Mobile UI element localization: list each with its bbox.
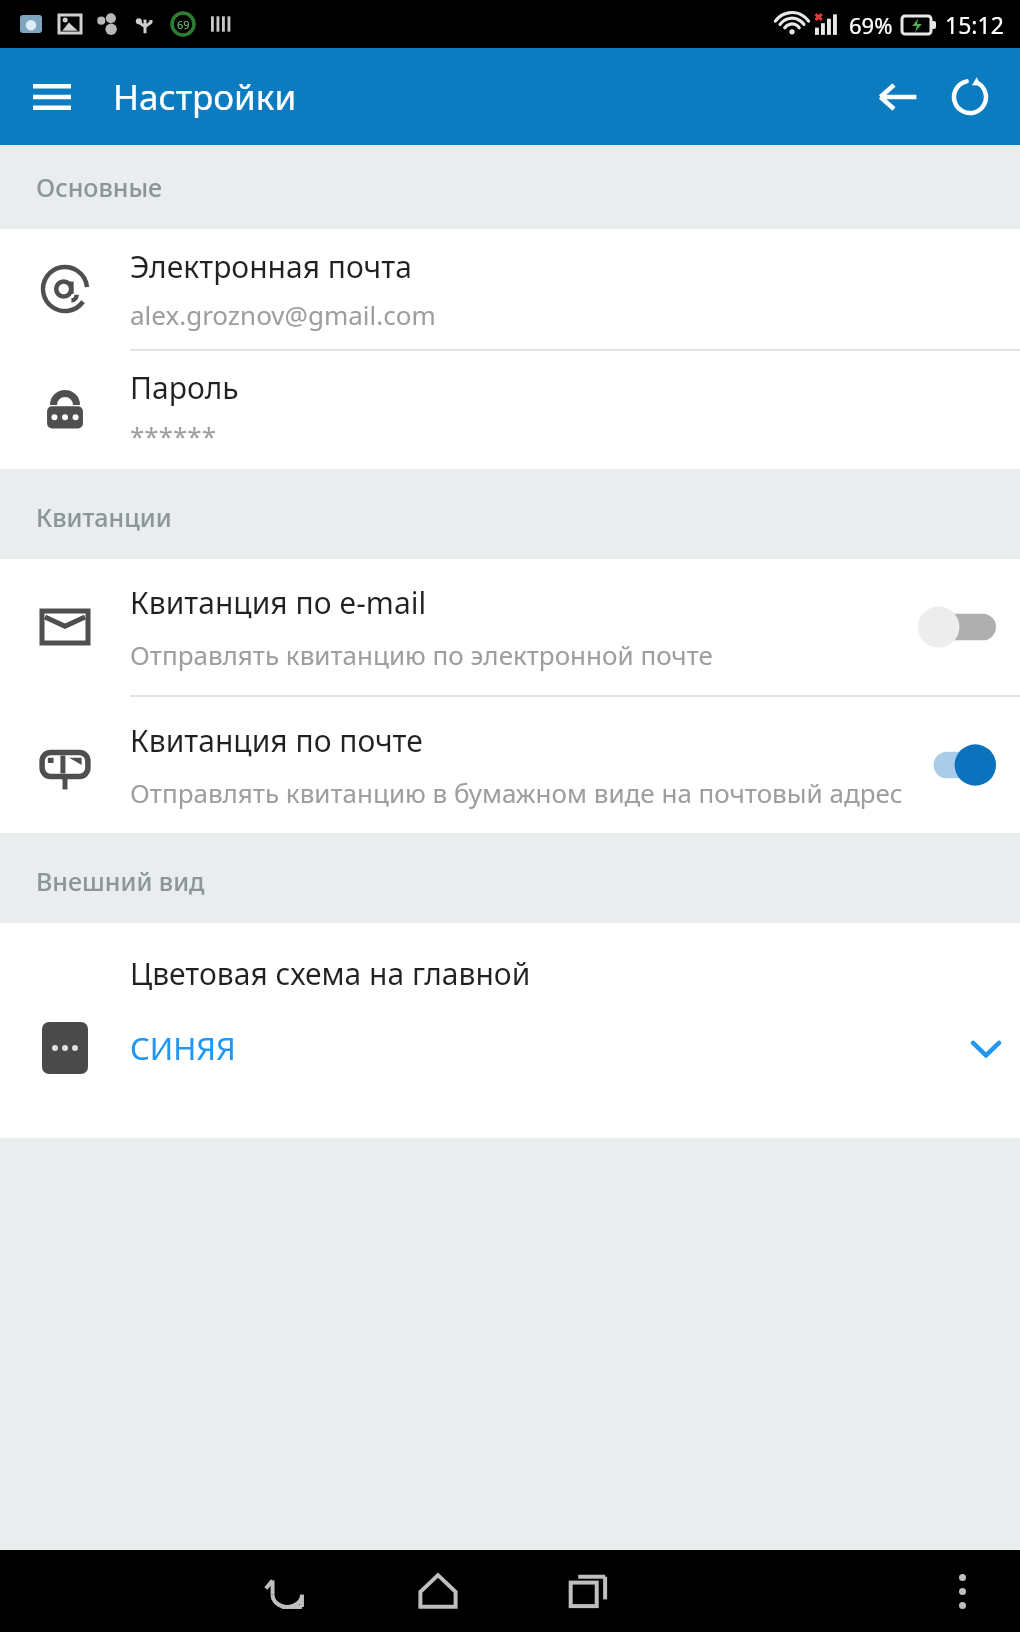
staticText: СИНЯЯ: [130, 1027, 236, 1069]
button[interactable]: Home: [392, 1550, 484, 1632]
button[interactable]: Menu: [22, 67, 82, 127]
button[interactable]: Off: [918, 604, 996, 650]
staticText: Электронная почта: [130, 246, 412, 287]
staticText: Цветовая схема на главной: [130, 953, 531, 994]
button[interactable]: More options: [922, 1551, 1002, 1631]
staticText: 69: [177, 17, 190, 32]
button[interactable]: On: [918, 742, 996, 788]
staticText: Квитанция по почте: [130, 720, 423, 761]
staticText: Квитанции: [36, 500, 172, 534]
button[interactable]: Электронная почта: [0, 229, 1020, 349]
staticText: Квитанция по e-mail: [130, 582, 427, 623]
button[interactable]: Recent apps: [544, 1550, 636, 1632]
staticText: Пароль: [130, 367, 239, 408]
button[interactable]: Цветовая схема на главной: [0, 923, 1020, 1138]
button[interactable]: Expand: [952, 1014, 1020, 1082]
staticText: ******: [130, 418, 216, 453]
button[interactable]: Квитанция по почте: [0, 697, 1020, 833]
staticText: Внешний вид: [36, 864, 205, 898]
staticText: Отправлять квитанцию по электронной почт…: [130, 637, 713, 672]
button[interactable]: Квитанция по e-mail: [0, 559, 1020, 695]
staticText: 15:12: [945, 9, 1004, 40]
staticText: Отправлять квитанцию в бумажном виде на …: [130, 775, 903, 810]
staticText: alex.groznov@gmail.com: [130, 297, 436, 332]
staticText: Основные: [36, 170, 163, 204]
button[interactable]: Back: [862, 61, 934, 133]
button[interactable]: Refresh: [934, 61, 1006, 133]
button[interactable]: Back: [240, 1550, 332, 1632]
staticText: Настройки: [113, 73, 297, 121]
button[interactable]: Пароль: [0, 351, 1020, 469]
staticText: 69%: [849, 10, 893, 40]
